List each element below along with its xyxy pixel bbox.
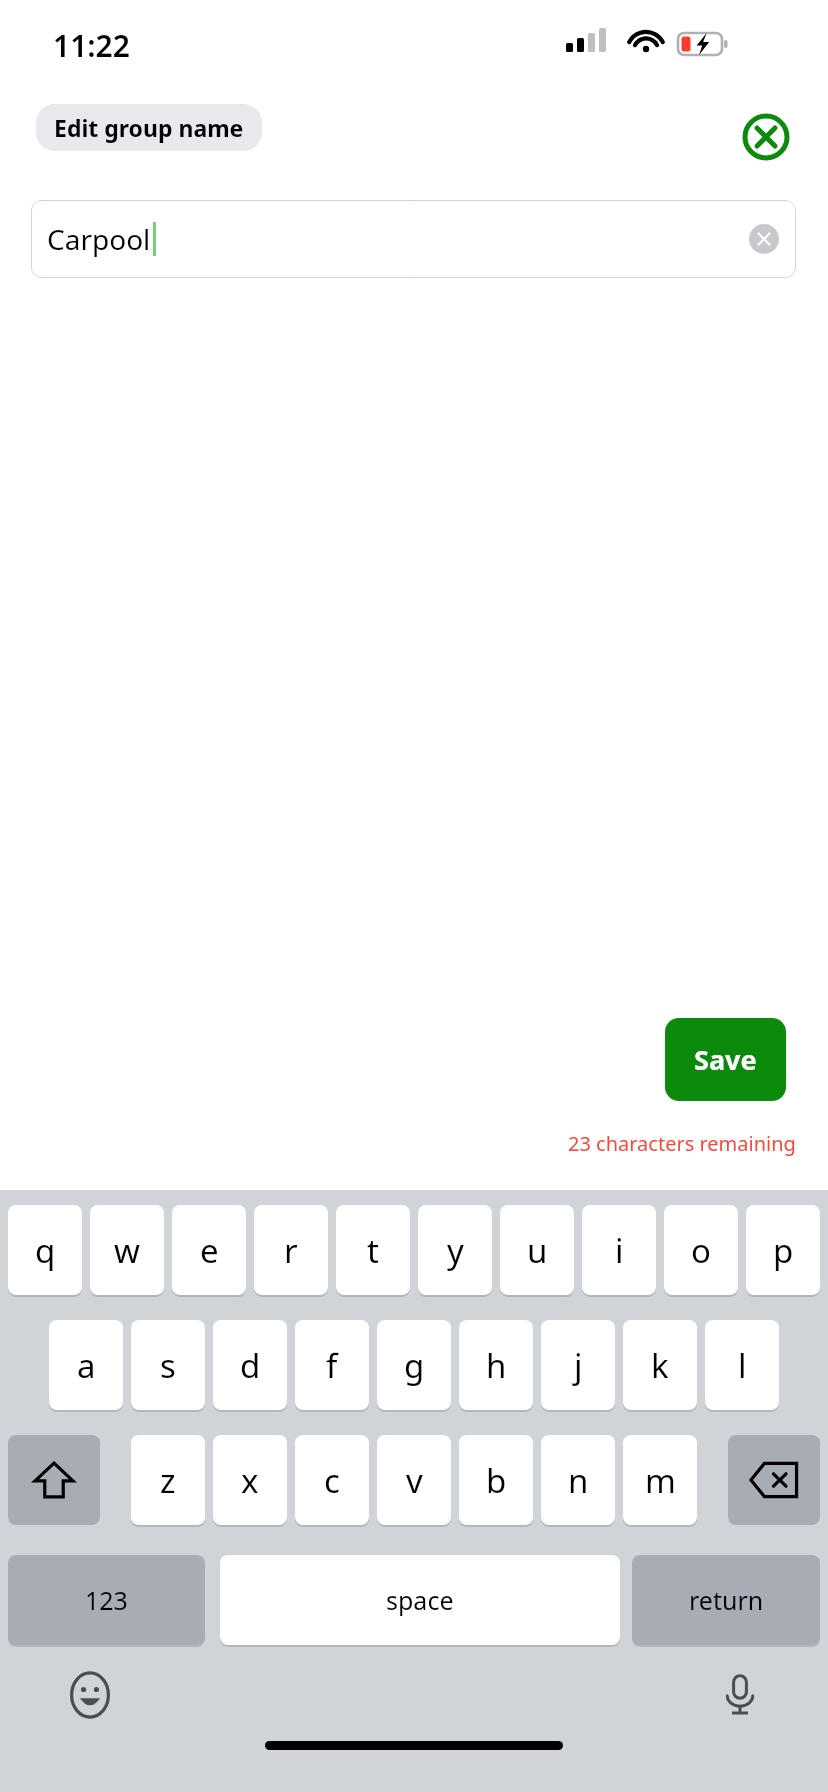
button[interactable]: Shift	[8, 1435, 100, 1525]
staticText: g	[404, 1343, 425, 1388]
button[interactable]: q	[8, 1205, 82, 1295]
staticText: y	[447, 1228, 464, 1273]
button[interactable]: z	[131, 1435, 205, 1525]
button[interactable]: i	[582, 1205, 656, 1295]
staticText: z	[160, 1458, 176, 1503]
button[interactable]: Voice input	[712, 1667, 768, 1723]
button[interactable]: Carpool	[31, 200, 796, 278]
staticText: 123	[85, 1583, 128, 1617]
staticText: Carpool	[47, 220, 151, 258]
button[interactable]: g	[377, 1320, 451, 1410]
button[interactable]: n	[541, 1435, 615, 1525]
staticText: s	[160, 1343, 176, 1388]
staticText: x	[241, 1458, 259, 1503]
button[interactable]: d	[213, 1320, 287, 1410]
button[interactable]: x	[213, 1435, 287, 1525]
button[interactable]: o	[664, 1205, 738, 1295]
button[interactable]: c	[295, 1435, 369, 1525]
staticText: Save	[694, 1041, 757, 1078]
staticText: e	[200, 1228, 219, 1273]
button[interactable]: t	[336, 1205, 410, 1295]
button[interactable]: e	[172, 1205, 246, 1295]
staticText: w	[114, 1228, 140, 1273]
staticText: 23 characters remaining	[568, 1130, 796, 1157]
button[interactable]: j	[541, 1320, 615, 1410]
staticText: v	[406, 1458, 423, 1503]
button[interactable]: p	[746, 1205, 820, 1295]
staticText: m	[645, 1458, 676, 1503]
button[interactable]: h	[459, 1320, 533, 1410]
button[interactable]: Emoji	[62, 1667, 118, 1723]
button[interactable]: u	[500, 1205, 574, 1295]
staticText: f	[326, 1343, 338, 1388]
staticText: k	[651, 1343, 669, 1388]
staticText: l	[738, 1343, 747, 1388]
button[interactable]: a	[49, 1320, 123, 1410]
staticText: b	[486, 1458, 507, 1503]
staticText: c	[324, 1458, 340, 1503]
staticText: d	[240, 1343, 261, 1388]
button[interactable]: l	[705, 1320, 779, 1410]
button[interactable]: w	[90, 1205, 164, 1295]
button[interactable]: k	[623, 1320, 697, 1410]
button[interactable]: 123	[8, 1555, 205, 1645]
button[interactable]: y	[418, 1205, 492, 1295]
button[interactable]: Save	[665, 1018, 786, 1101]
button[interactable]: Close	[738, 109, 794, 165]
staticText: p	[773, 1228, 794, 1273]
button[interactable]: b	[459, 1435, 533, 1525]
staticText: a	[77, 1343, 96, 1388]
button[interactable]: f	[295, 1320, 369, 1410]
staticText: q	[35, 1228, 56, 1273]
button[interactable]: m	[623, 1435, 697, 1525]
staticText: Edit group name	[54, 112, 244, 143]
staticText: return	[689, 1583, 764, 1617]
staticText: h	[486, 1343, 507, 1388]
staticText: j	[574, 1343, 583, 1388]
button[interactable]: r	[254, 1205, 328, 1295]
button[interactable]: s	[131, 1320, 205, 1410]
button[interactable]: Edit group name	[36, 104, 262, 151]
staticText: 11:22	[53, 25, 130, 66]
staticText: i	[615, 1228, 624, 1273]
staticText: n	[568, 1458, 589, 1503]
staticText: u	[527, 1228, 548, 1273]
staticText: t	[367, 1228, 379, 1273]
staticText: o	[691, 1228, 711, 1273]
staticText: space	[386, 1583, 454, 1617]
button[interactable]: v	[377, 1435, 451, 1525]
staticText: r	[284, 1228, 298, 1273]
button[interactable]: space	[220, 1555, 620, 1645]
button[interactable]: Backspace	[728, 1435, 820, 1525]
button[interactable]: Clear text	[742, 217, 786, 261]
button[interactable]: return	[632, 1555, 820, 1645]
